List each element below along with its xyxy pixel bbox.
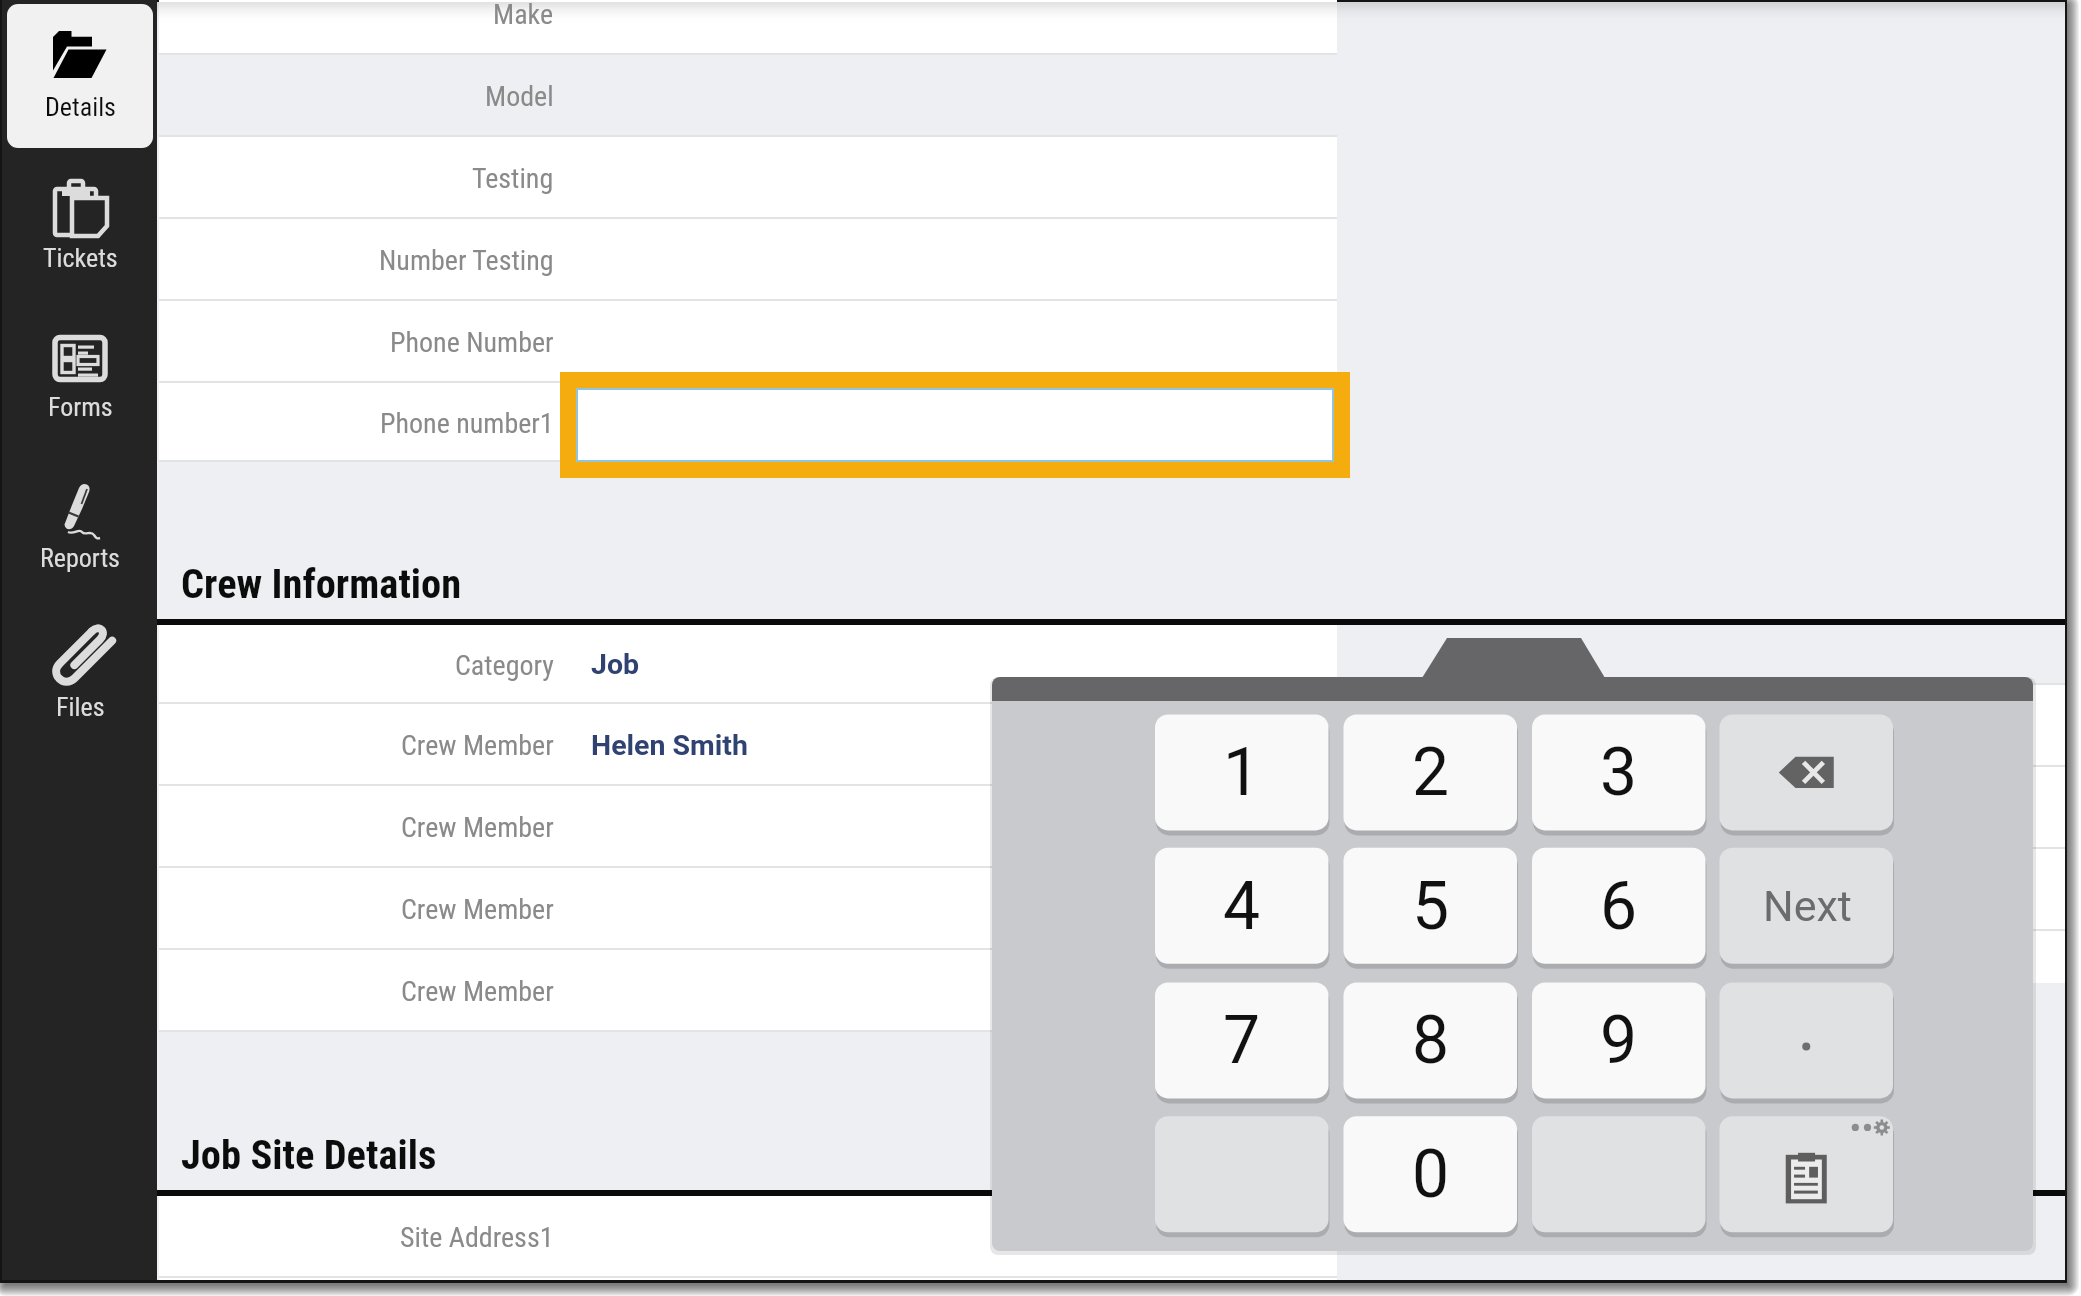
- button[interactable]: [159, 704, 1337, 786]
- button[interactable]: [159, 786, 1337, 868]
- button[interactable]: [7, 5, 153, 149]
- staticText: 6: [1600, 868, 1638, 945]
- staticText: 1: [1223, 734, 1261, 811]
- button[interactable]: [159, 0, 1337, 55]
- staticText: Job Site Details: [181, 1131, 437, 1178]
- staticText: 2: [1412, 734, 1450, 811]
- button[interactable]: [159, 1196, 1337, 1278]
- staticText: Reports: [40, 543, 120, 573]
- button[interactable]: [7, 458, 153, 602]
- button[interactable]: [159, 219, 1337, 301]
- button[interactable]: [159, 383, 1337, 462]
- button[interactable]: [159, 950, 1337, 1032]
- staticText: Phone Number: [390, 326, 554, 359]
- button[interactable]: Blank key: [1532, 1116, 1706, 1232]
- button[interactable]: Next: [1720, 848, 1894, 964]
- button[interactable]: 9: [1532, 982, 1706, 1098]
- staticText: Details: [45, 92, 116, 122]
- staticText: Category: [455, 649, 554, 682]
- staticText: 9: [1600, 1002, 1638, 1079]
- staticText: Job: [591, 648, 640, 681]
- staticText: Site Address1: [400, 1221, 554, 1254]
- button[interactable]: 4: [1155, 848, 1329, 964]
- button[interactable]: [7, 309, 153, 453]
- staticText: Files: [56, 692, 105, 722]
- staticText: 0: [1412, 1136, 1450, 1213]
- button[interactable]: 3: [1532, 714, 1706, 830]
- button[interactable]: [159, 137, 1337, 219]
- button[interactable]: Blank key: [1155, 1116, 1329, 1232]
- staticText: Forms: [48, 392, 113, 422]
- button[interactable]: [159, 55, 1337, 137]
- staticText: Next: [1763, 881, 1852, 931]
- staticText: Testing: [472, 162, 554, 195]
- button[interactable]: Backspace: [1720, 714, 1894, 830]
- button[interactable]: 5: [1344, 848, 1518, 964]
- staticText: Tickets: [43, 243, 118, 273]
- staticText: 7: [1223, 1002, 1261, 1079]
- button[interactable]: 2: [1344, 714, 1518, 830]
- staticText: Crew Member: [401, 811, 554, 844]
- staticText: Crew Member: [401, 975, 554, 1008]
- button[interactable]: [7, 608, 153, 752]
- button[interactable]: Decimal point: [1720, 982, 1894, 1098]
- button[interactable]: 8: [1344, 982, 1518, 1098]
- staticText: 4: [1223, 868, 1261, 945]
- staticText: Crew Information: [181, 560, 462, 607]
- staticText: Crew Member: [401, 893, 554, 926]
- button[interactable]: 0: [1344, 1116, 1518, 1232]
- staticText: Helen Smith: [591, 729, 748, 762]
- button[interactable]: Switch keyboard: [1720, 1116, 1894, 1232]
- button[interactable]: [7, 158, 153, 302]
- staticText: Crew Member: [401, 729, 554, 762]
- button[interactable]: 1: [1155, 714, 1329, 830]
- button[interactable]: [159, 625, 1337, 704]
- staticText: 3: [1600, 734, 1638, 811]
- button[interactable]: [159, 301, 1337, 383]
- button[interactable]: 6: [1532, 848, 1706, 964]
- staticText: Number Testing: [379, 244, 554, 277]
- button[interactable]: [159, 868, 1337, 950]
- staticText: Model: [485, 80, 554, 113]
- staticText: Make: [493, 0, 554, 31]
- button[interactable]: 7: [1155, 982, 1329, 1098]
- staticText: 5: [1412, 868, 1450, 945]
- staticText: 8: [1412, 1002, 1450, 1079]
- staticText: Phone number1: [380, 407, 554, 440]
